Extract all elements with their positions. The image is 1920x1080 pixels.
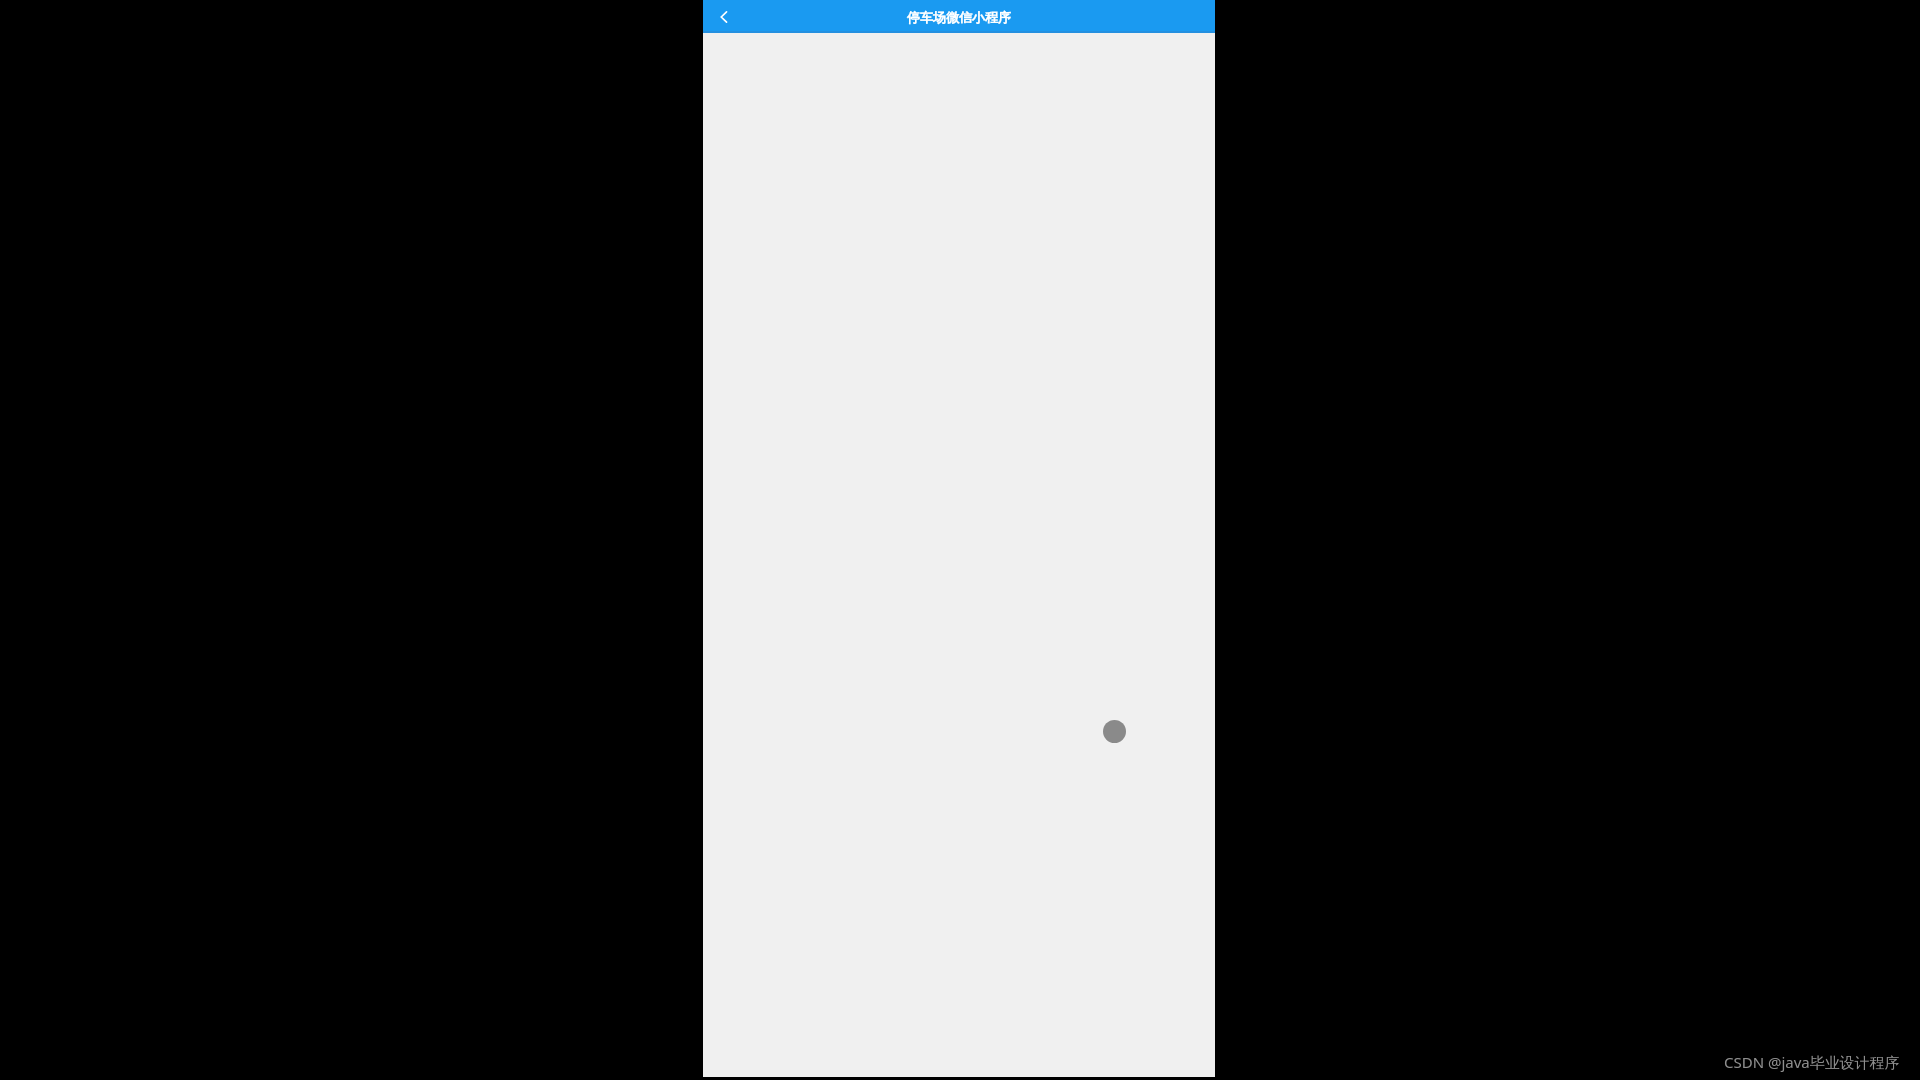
button[interactable]: Back <box>709 0 739 33</box>
staticText: 停车场微信小程序 <box>907 9 1011 25</box>
staticText: CSDN @java毕业设计程序 <box>1724 1052 1900 1072</box>
